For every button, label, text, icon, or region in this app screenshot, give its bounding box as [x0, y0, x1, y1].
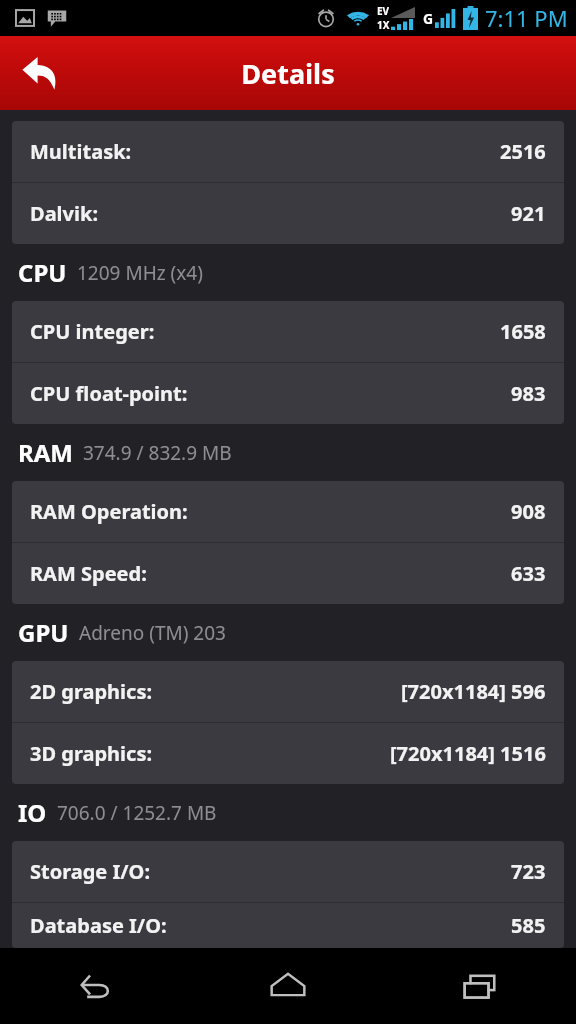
button[interactable]: Database I/O:	[12, 903, 564, 948]
button[interactable]: CPU integer:	[12, 301, 564, 362]
staticText: [720x1184] 1516	[390, 740, 546, 767]
staticText: 2516	[500, 138, 546, 165]
staticText: 585	[511, 912, 546, 939]
button[interactable]: CPU float-point:	[12, 363, 564, 424]
button[interactable]: Storage I/O:	[12, 841, 564, 902]
button[interactable]: RAM Speed:	[12, 543, 564, 604]
staticText: [720x1184] 596	[401, 678, 546, 705]
staticText: 3D graphics:	[30, 740, 153, 767]
staticText: 983	[511, 380, 546, 407]
button[interactable]: Back	[0, 948, 192, 1024]
button[interactable]: Home	[192, 948, 384, 1024]
staticText: 2D graphics:	[30, 678, 153, 705]
staticText: RAM	[18, 436, 73, 469]
button[interactable]: Dalvik:	[12, 183, 564, 244]
staticText: Details	[241, 55, 335, 92]
staticText: 7:11 PM	[485, 3, 568, 33]
staticText: 633	[511, 560, 546, 587]
staticText: 908	[511, 498, 546, 525]
staticText: RAM Operation:	[30, 498, 188, 525]
staticText: 1209 MHz (x4)	[77, 260, 203, 286]
button[interactable]: Multitask:	[12, 121, 564, 182]
staticText: 723	[511, 858, 546, 885]
staticText: IO	[18, 796, 47, 829]
staticText: Multitask:	[30, 138, 132, 165]
staticText: CPU float-point:	[30, 380, 188, 407]
staticText: CPU	[18, 256, 67, 289]
staticText: 1X	[377, 18, 390, 32]
staticText: CPU integer:	[30, 318, 155, 345]
staticText: 706.0 / 1252.7 MB	[57, 800, 217, 826]
staticText: EV	[377, 4, 390, 18]
staticText: 921	[511, 200, 546, 227]
staticText: Database I/O:	[30, 912, 167, 939]
button[interactable]: Recent apps	[384, 948, 576, 1024]
button[interactable]: 3D graphics:	[12, 723, 564, 784]
button[interactable]: 2D graphics:	[12, 661, 564, 722]
staticText: Dalvik:	[30, 200, 98, 227]
button[interactable]: RAM Operation:	[12, 481, 564, 542]
staticText: GPU	[18, 616, 69, 649]
staticText: 374.9 / 832.9 MB	[83, 440, 232, 466]
staticText: Adreno (TM) 203	[79, 620, 226, 646]
staticText: Storage I/O:	[30, 858, 151, 885]
staticText: G	[423, 9, 434, 28]
button[interactable]: Back	[10, 43, 70, 103]
staticText: RAM Speed:	[30, 560, 147, 587]
staticText: 1658	[500, 318, 546, 345]
